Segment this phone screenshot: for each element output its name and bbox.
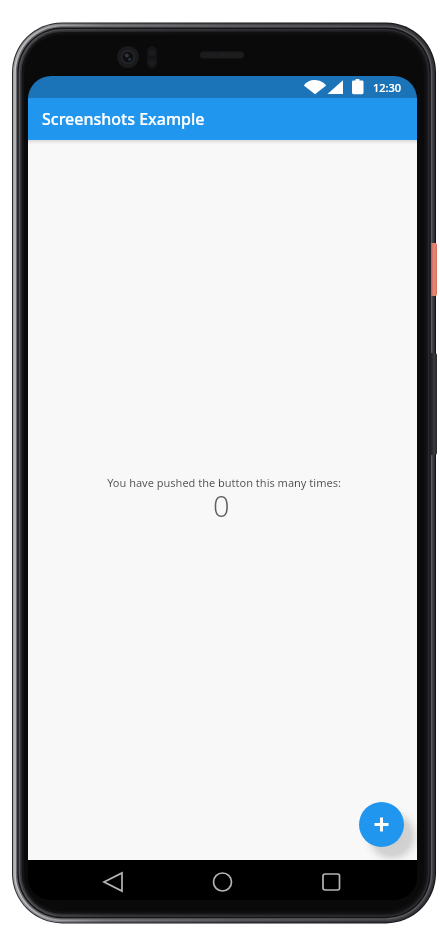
staticText: 12:30: [373, 80, 402, 95]
button[interactable]: Add: [359, 802, 404, 847]
button[interactable]: Home: [192, 862, 252, 900]
staticText: Screenshots Example: [42, 108, 205, 130]
button[interactable]: Screenshots Example: [28, 98, 417, 140]
staticText: You have pushed the button this many tim…: [107, 475, 341, 490]
staticText: 0: [213, 486, 230, 525]
button[interactable]: Volume button: [431, 353, 437, 455]
button[interactable]: Power button: [431, 243, 437, 296]
button[interactable]: Back: [83, 862, 143, 900]
button[interactable]: Recent apps: [301, 862, 361, 900]
